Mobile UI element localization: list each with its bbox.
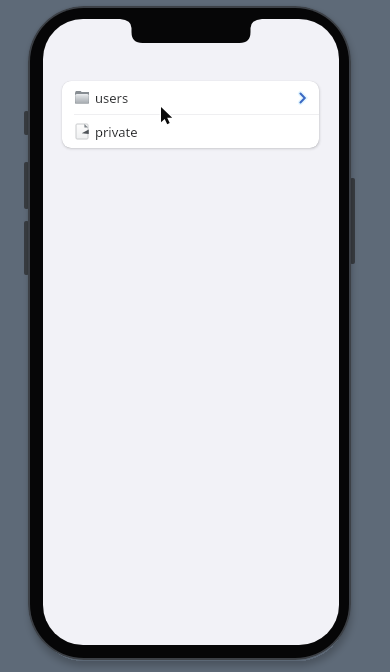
staticText: private — [95, 123, 138, 141]
button[interactable]: users — [62, 81, 319, 114]
button[interactable]: private — [62, 115, 319, 148]
staticText: users — [95, 89, 129, 107]
